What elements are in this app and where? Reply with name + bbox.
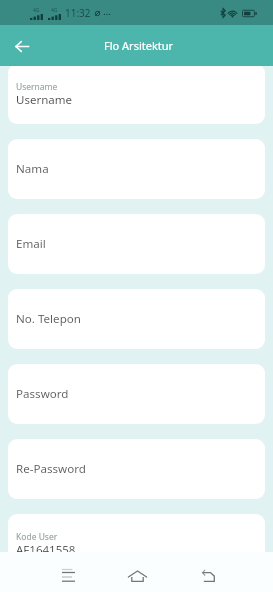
button[interactable]: Kode User bbox=[8, 514, 265, 552]
staticText: Password bbox=[16, 386, 69, 402]
staticText: Username bbox=[16, 81, 58, 93]
staticText: Nama bbox=[16, 161, 49, 177]
staticText: AF1641558 bbox=[16, 542, 76, 552]
button[interactable]: Back bbox=[8, 32, 36, 60]
staticText: Flo Arsitektur bbox=[104, 38, 174, 53]
button[interactable]: Recent apps bbox=[48, 561, 88, 589]
button[interactable]: No. Telepon bbox=[8, 289, 265, 349]
button[interactable]: Email bbox=[8, 214, 265, 274]
staticText: Kode User bbox=[16, 531, 58, 543]
staticText: No. Telepon bbox=[16, 311, 81, 327]
button[interactable]: Nama bbox=[8, 139, 265, 199]
staticText: 11:32 bbox=[65, 6, 91, 20]
staticText: Email bbox=[16, 236, 46, 252]
staticText: 4G bbox=[51, 7, 58, 14]
staticText: 4G bbox=[33, 7, 40, 14]
button[interactable]: Password bbox=[8, 364, 265, 424]
button[interactable]: Re-Password bbox=[8, 439, 265, 499]
button[interactable]: Back bbox=[188, 561, 228, 589]
staticText: Re-Password bbox=[16, 461, 86, 477]
staticText: Username bbox=[16, 92, 72, 108]
button[interactable]: Username bbox=[8, 66, 265, 124]
button[interactable]: Home bbox=[117, 561, 157, 589]
